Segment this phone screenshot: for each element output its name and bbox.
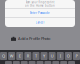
button[interactable]: Y — [40, 52, 48, 60]
button[interactable]: E — [16, 52, 23, 60]
staticText: Scan your fingerprint — [25, 0, 54, 4]
button[interactable]: Q — [0, 52, 7, 60]
staticText: E — [19, 53, 21, 59]
button[interactable]: J — [52, 61, 59, 64]
staticText: R — [27, 53, 29, 59]
button[interactable]: K — [60, 61, 67, 64]
staticText: on the Home button — [25, 4, 55, 8]
staticText: W — [10, 53, 14, 59]
staticText: O — [67, 53, 70, 59]
staticText: U — [51, 53, 54, 59]
button[interactable]: R — [24, 52, 31, 60]
staticText: Cancel — [35, 21, 44, 24]
button[interactable]: F — [29, 61, 36, 64]
button[interactable]: S — [13, 61, 20, 64]
button[interactable]: H — [44, 61, 51, 64]
button[interactable]: T — [32, 52, 39, 60]
staticText: Add a Profile Photo — [18, 36, 50, 41]
button[interactable]: A — [5, 61, 12, 64]
staticText: Enter Passcode — [30, 11, 50, 15]
button[interactable]: Add a Profile Photo — [0, 35, 80, 42]
staticText: Y — [43, 53, 45, 59]
button[interactable]: P — [73, 52, 80, 60]
button[interactable]: D — [21, 61, 28, 64]
button[interactable]: Enter Passcode — [5, 9, 75, 17]
button[interactable]: I — [57, 52, 64, 60]
staticText: T — [35, 53, 37, 59]
button[interactable]: O — [65, 52, 72, 60]
button[interactable]: W — [8, 52, 15, 60]
staticText: Q — [2, 53, 5, 59]
staticText: I — [60, 53, 61, 59]
button[interactable]: G — [37, 61, 43, 64]
button[interactable]: Cancel — [5, 18, 75, 27]
button[interactable]: L — [68, 61, 75, 64]
button[interactable]: U — [49, 52, 56, 60]
staticText: P — [75, 53, 77, 59]
